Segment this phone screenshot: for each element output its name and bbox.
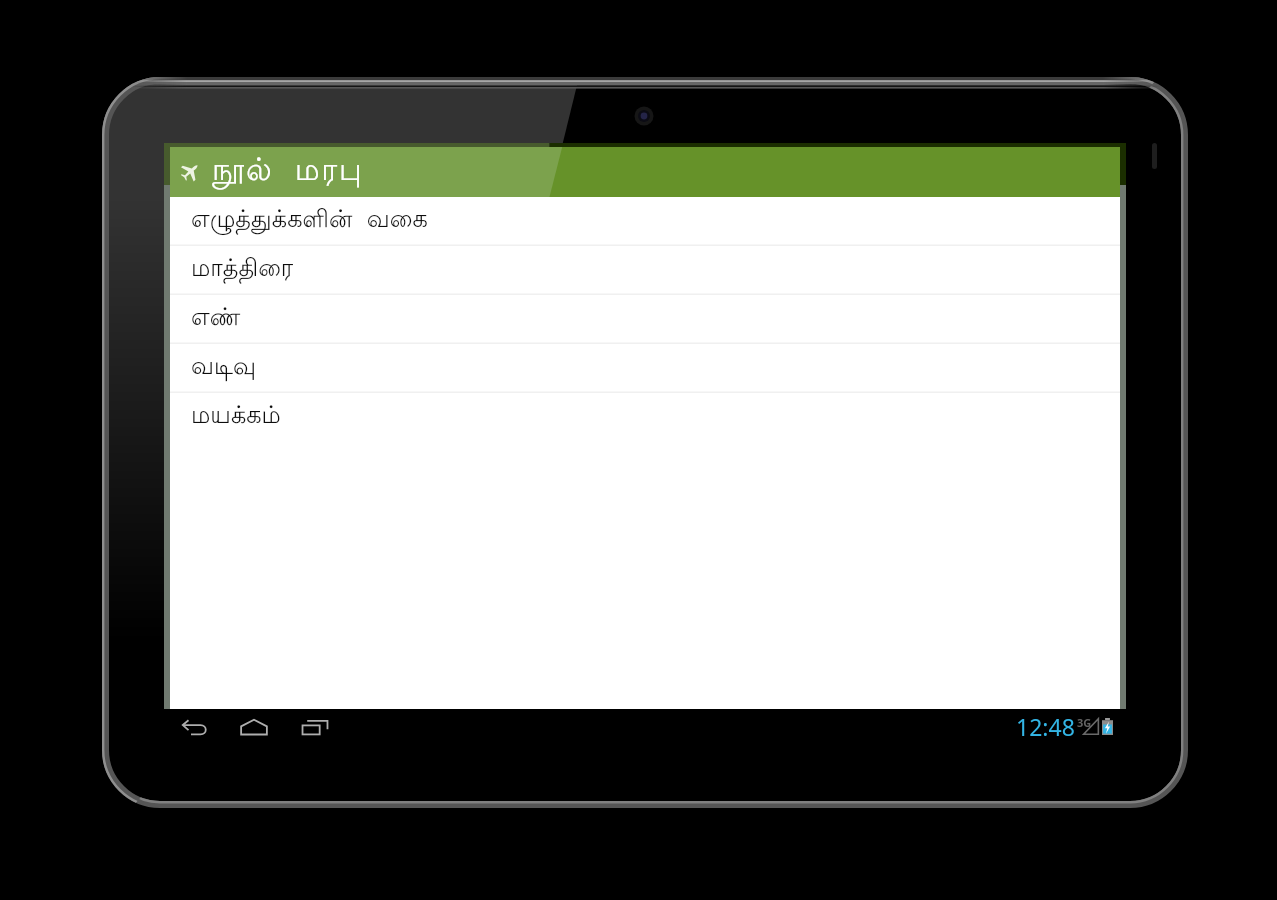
button[interactable]: எழுத்துக்களின் வகை: [170, 197, 1120, 246]
button[interactable]: Back: [170, 711, 218, 743]
staticText: நூல் மரபு: [212, 154, 364, 192]
button[interactable]: Home: [230, 711, 278, 743]
staticText: எண்: [191, 305, 241, 334]
button[interactable]: Airplane: [170, 147, 1120, 197]
button[interactable]: மாத்திரை: [170, 246, 1120, 295]
button[interactable]: Recent apps: [291, 711, 339, 743]
staticText: மாத்திரை: [191, 256, 294, 285]
staticText: 12:48: [1016, 711, 1075, 742]
button[interactable]: மயக்கம்: [170, 393, 1120, 442]
staticText: 3G: [1077, 715, 1092, 730]
staticText: வடிவு: [191, 354, 257, 383]
staticText: எழுத்துக்களின் வகை: [191, 207, 428, 236]
button[interactable]: எண்: [170, 295, 1120, 344]
button[interactable]: வடிவு: [170, 344, 1120, 393]
staticText: மயக்கம்: [191, 403, 281, 432]
other: Airplane: [181, 162, 200, 181]
